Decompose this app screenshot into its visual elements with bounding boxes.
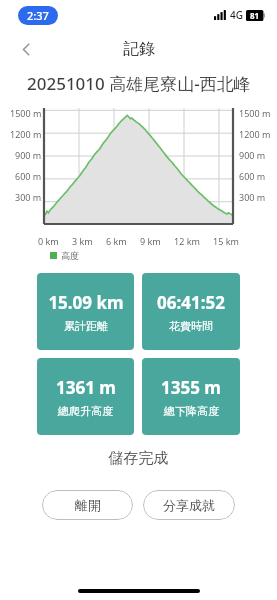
staticText: 81 (250, 10, 260, 21)
staticText: 高度 (61, 250, 79, 261)
staticText: 600 m (239, 170, 266, 182)
staticText: 花費時間 (169, 319, 213, 333)
button[interactable]: 分享成就 (143, 490, 235, 520)
staticText: 記錄 (123, 39, 155, 59)
staticText: 0 km (38, 235, 59, 247)
staticText: 1200 m (239, 128, 271, 140)
button[interactable]: 15.09 km (37, 273, 134, 350)
staticText: 2:37 (27, 8, 49, 23)
staticText: 20251010 高雄尾寮山-西北峰 (27, 72, 251, 95)
staticText: 300 m (239, 191, 266, 203)
staticText: 3 km (72, 235, 93, 247)
staticText: 900 m (15, 149, 42, 161)
staticText: 9 km (140, 235, 161, 247)
staticText: 1200 m (10, 128, 42, 140)
staticText: 06:41:52 (157, 291, 225, 314)
staticText: 1355 m (161, 376, 221, 399)
staticText: 1500 m (10, 107, 42, 119)
staticText: 900 m (239, 149, 266, 161)
staticText: 總下降高度 (164, 404, 219, 418)
staticText: 離開 (75, 497, 101, 513)
button[interactable]: 1361 m (37, 358, 134, 435)
button[interactable]: 1355 m (142, 358, 240, 435)
staticText: 300 m (15, 191, 42, 203)
staticText: 15.09 km (48, 291, 124, 314)
staticText: 1361 m (56, 376, 116, 399)
staticText: 15 km (213, 235, 239, 247)
staticText: 累計距離 (64, 319, 108, 333)
button[interactable]: 06:41:52 (142, 273, 240, 350)
staticText: 12 km (174, 235, 200, 247)
staticText: 600 m (15, 170, 42, 182)
staticText: 分享成就 (163, 497, 215, 513)
staticText: 4G (230, 8, 243, 22)
button[interactable]: 離開 (42, 490, 133, 520)
staticText: 總爬升高度 (58, 404, 113, 418)
button[interactable]: Back (8, 31, 44, 67)
staticText: 儲存完成 (0, 449, 277, 468)
staticText: 6 km (106, 235, 127, 247)
staticText: 1500 m (239, 107, 271, 119)
